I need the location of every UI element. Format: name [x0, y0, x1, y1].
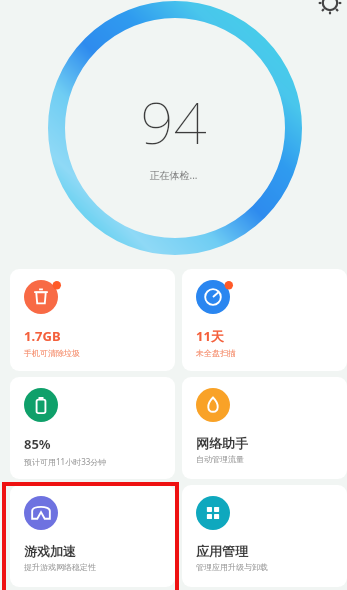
staticText: 管理应用升级与卸载 [196, 562, 268, 572]
button[interactable]: Settings [318, 0, 342, 15]
staticText: 94 [140, 82, 207, 161]
staticText: 游戏加速 [24, 543, 76, 559]
staticText: 自动管理流量 [196, 454, 244, 464]
staticText: 提升游戏网络稳定性 [24, 562, 96, 572]
staticText: 未全盘扫描 [196, 348, 236, 358]
staticText: 预计可用11小时33分钟 [24, 456, 107, 467]
button[interactable]: 应用管理 [182, 485, 347, 587]
staticText: 85% [24, 435, 51, 453]
staticText: 正在体检... [149, 168, 198, 182]
staticText: 应用管理 [196, 543, 248, 559]
button[interactable]: 网络助手 [182, 377, 347, 479]
staticText: 网络助手 [196, 435, 248, 451]
button[interactable]: 1.7GB [10, 269, 175, 371]
button[interactable]: 游戏加速 [10, 485, 175, 587]
staticText: 手机可清除垃圾 [24, 348, 80, 358]
button[interactable]: 11天 [182, 269, 347, 371]
staticText: 1.7GB [24, 327, 61, 345]
staticText: 11天 [196, 327, 224, 345]
button[interactable]: 85% [10, 377, 175, 479]
